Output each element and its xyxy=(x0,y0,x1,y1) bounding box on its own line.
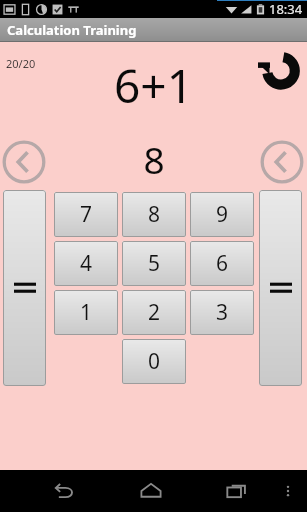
staticText: 20/20 xyxy=(6,56,36,71)
button[interactable]: 5 xyxy=(122,241,186,286)
staticText: 6 xyxy=(216,249,229,278)
button[interactable]: 6 xyxy=(190,241,254,286)
button[interactable]: 1 xyxy=(54,290,118,335)
button[interactable]: 2 xyxy=(122,290,186,335)
staticText: 5 xyxy=(148,249,161,278)
button[interactable]: 4 xyxy=(54,241,118,286)
staticText: 4 xyxy=(80,249,93,278)
staticText: 8 xyxy=(148,200,161,229)
staticText: 9 xyxy=(216,200,229,229)
button[interactable]: 3 xyxy=(190,290,254,335)
button[interactable]: 0 xyxy=(122,339,186,384)
button[interactable]: Previous xyxy=(259,139,305,185)
button[interactable]: Equals xyxy=(3,190,46,386)
staticText: 8 xyxy=(143,134,165,184)
staticText: 0 xyxy=(148,347,161,376)
button[interactable]: Previous xyxy=(1,139,47,185)
staticText: 6+1 xyxy=(114,54,193,117)
button[interactable]: Back xyxy=(48,474,82,508)
staticText: 2 xyxy=(148,298,161,327)
staticText: 3 xyxy=(216,298,229,327)
staticText: Calculation Training xyxy=(7,21,137,39)
staticText: 18:34 xyxy=(269,0,303,18)
button[interactable]: 7 xyxy=(54,192,118,237)
button[interactable]: More options xyxy=(276,479,300,503)
button[interactable]: 8 xyxy=(122,192,186,237)
staticText: 7 xyxy=(80,200,93,229)
button[interactable]: Equals xyxy=(259,190,302,386)
button[interactable]: Home xyxy=(134,474,168,508)
button[interactable]: Recents xyxy=(220,474,254,508)
button[interactable]: Undo xyxy=(258,45,304,91)
button[interactable]: 9 xyxy=(190,192,254,237)
staticText: 1 xyxy=(80,298,93,327)
